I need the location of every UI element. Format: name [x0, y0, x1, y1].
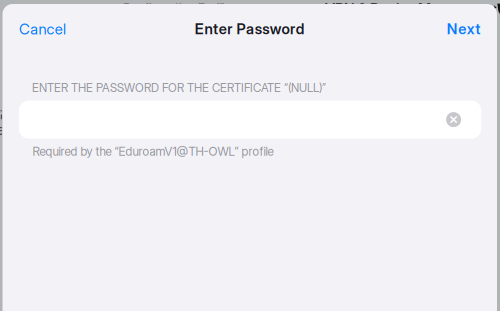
button[interactable]: Next [445, 13, 482, 45]
staticText: Enter Password [195, 20, 305, 38]
staticText: Cancel [19, 20, 66, 38]
button[interactable]: Cancel [17, 13, 68, 45]
staticText: Required by the “EduroamV1@TH-OWL” profi… [33, 144, 274, 159]
staticText: ENTER THE PASSWORD FOR THE CERTIFICATE “… [32, 81, 326, 95]
button[interactable]: Clear text [442, 108, 466, 132]
staticText: Next [447, 20, 480, 38]
button[interactable]: Password [19, 101, 481, 139]
staticText: VPN & Device Management [325, 0, 500, 18]
staticText: Configuration Profile [122, 0, 230, 15]
